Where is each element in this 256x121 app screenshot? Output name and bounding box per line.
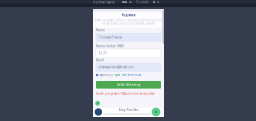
staticText: Nama xyxy=(96,28,105,32)
button[interactable]: Start a chat xyxy=(95,101,100,106)
staticText: syarat xyxy=(114,73,120,77)
button[interactable]: Daftar Sekarang xyxy=(96,81,161,89)
staticText: Nomor Induk (NIK) xyxy=(96,44,124,48)
staticText: Saya setuju xyxy=(99,73,113,77)
staticText: Bookmark xyxy=(136,0,148,4)
button[interactable]: Saya setuju xyxy=(96,73,161,77)
button[interactable]: Sudah punya akun? Masuk untuk melanjutka… xyxy=(96,92,161,95)
staticText: Registrasi xyxy=(121,13,135,17)
staticText: 32.01 xyxy=(98,51,107,55)
staticText: citralaraspitaloka@email.com xyxy=(98,65,133,69)
staticText: melanjutkan proses pendaftaran layanan xyxy=(102,22,155,25)
staticText: Email xyxy=(96,58,104,62)
staticText: Bing Pras Net xyxy=(118,108,138,112)
button[interactable]: Chat agent profile xyxy=(94,107,103,117)
staticText: Silakan lengkapi data diri anda dengan b… xyxy=(93,18,163,22)
staticText: Sudah punya akun? Masuk untuk melanjutka… xyxy=(96,92,155,95)
staticText: dan ketentuan xyxy=(121,73,141,77)
button[interactable]: Chat on WhatsApp xyxy=(152,108,160,116)
staticText: registrasi.layanan xyxy=(93,0,115,4)
staticText: Citra Laras Pitaloka xyxy=(98,36,121,39)
staticText: Daftar Sekarang xyxy=(116,83,140,86)
